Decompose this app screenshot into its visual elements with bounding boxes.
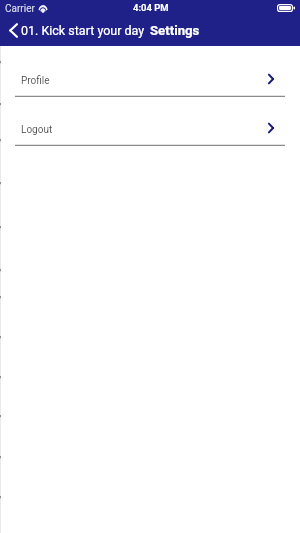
staticText: Profile — [21, 75, 50, 87]
staticText: 4:04 PM — [133, 2, 169, 13]
staticText: Carrier — [5, 3, 35, 15]
staticText: 01. Kick start your day — [21, 23, 145, 38]
staticText: Logout — [21, 124, 53, 136]
staticText: Settings — [150, 23, 200, 38]
button[interactable]: Back — [0, 21, 147, 40]
other: Back — [9, 23, 18, 38]
button[interactable]: Profile — [0, 63, 300, 97]
button[interactable]: Logout — [0, 112, 300, 146]
